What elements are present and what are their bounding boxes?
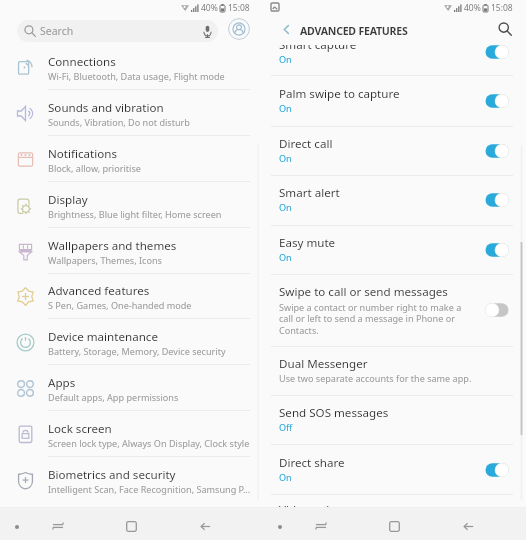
staticText: Palm swipe to capture [279, 86, 400, 102]
button[interactable]: Account [228, 18, 250, 40]
staticText: Screen lock type, Always On Display, Clo… [48, 437, 250, 449]
button[interactable]: Device maintenance [0, 319, 263, 365]
staticText: Battery, Storage, Memory, Device securit… [48, 345, 226, 357]
staticText: Dual Messenger [279, 356, 368, 372]
staticText: On [279, 201, 292, 213]
staticText: Wallpapers and themes [48, 238, 177, 254]
staticText: Default apps, App permissions [48, 391, 179, 403]
staticText: Send SOS messages [279, 405, 389, 421]
button[interactable]: Toggle on [484, 143, 510, 159]
staticText: Sounds and vibration [48, 100, 164, 116]
other: Voice search [203, 25, 212, 38]
button[interactable]: Apps [0, 365, 263, 411]
button[interactable]: Toggle on [484, 192, 510, 208]
staticText: 15:08 [491, 2, 513, 13]
staticText: Swipe a contact or number right to make … [279, 301, 462, 337]
button[interactable]: Back [273, 16, 299, 42]
staticText: On [279, 152, 292, 164]
staticText: Direct share [279, 455, 345, 471]
button[interactable]: Send SOS messages [263, 395, 526, 445]
button[interactable]: Menu [269, 516, 290, 537]
staticText: Device maintenance [48, 329, 158, 345]
staticText: Direct call [279, 136, 333, 152]
staticText: S Pen, Games, One-handed mode [48, 299, 192, 311]
button[interactable]: Dual Messenger [263, 346, 526, 396]
staticText: Apps [48, 375, 76, 391]
staticText: Sounds, Vibration, Do not disturb [48, 116, 190, 128]
staticText: 40% [464, 2, 481, 13]
staticText: Connections [48, 54, 116, 70]
button[interactable]: Menu [6, 516, 27, 537]
staticText: On [279, 102, 292, 114]
button[interactable]: Easy mute [263, 225, 526, 275]
button[interactable]: Swipe to call or send messages [263, 275, 526, 346]
button[interactable]: Smart capture [263, 45, 526, 76]
button[interactable]: Direct share [263, 445, 526, 495]
staticText: On [279, 471, 292, 483]
staticText: Intelligent Scan, Face Recognition, Sams… [48, 483, 251, 495]
staticText: Lock screen [48, 421, 112, 437]
button[interactable]: Search [492, 16, 518, 42]
staticText: Wi-Fi, Bluetooth, Data usage, Flight mod… [48, 70, 225, 82]
button[interactable]: Recents [47, 515, 69, 537]
button[interactable]: Sounds and vibration [0, 90, 263, 136]
staticText: Advanced features [48, 283, 150, 299]
button[interactable]: Toggle on [484, 242, 510, 258]
button[interactable]: Home [383, 515, 405, 537]
button[interactable]: Back [194, 515, 216, 537]
button[interactable]: Palm swipe to capture [263, 76, 526, 126]
button[interactable]: Display [0, 182, 263, 228]
staticText: Swipe to call or send messages [279, 284, 448, 300]
staticText: On [279, 251, 292, 263]
staticText: Biometrics and security [48, 467, 176, 483]
button[interactable]: Connections [0, 44, 263, 90]
button[interactable]: Wallpapers and themes [0, 228, 263, 274]
button[interactable]: Search [17, 20, 218, 42]
button[interactable]: Biometrics and security [0, 457, 263, 503]
staticText: Smart capture [279, 45, 357, 53]
button[interactable]: Notifications [0, 136, 263, 182]
button[interactable]: Toggle on [484, 462, 510, 478]
staticText: Wallpapers, Themes, Icons [48, 254, 162, 266]
button[interactable]: Smart alert [263, 175, 526, 225]
staticText: On [279, 53, 292, 65]
staticText: Block, allow, prioritise [48, 162, 141, 174]
staticText: 15:08 [228, 2, 250, 13]
button[interactable]: Toggle on [484, 45, 510, 60]
staticText: Off [279, 421, 293, 433]
staticText: Notifications [48, 146, 117, 162]
button[interactable]: Direct call [263, 126, 526, 176]
staticText: Video enhancer [279, 502, 365, 507]
staticText: 40% [201, 2, 218, 13]
button[interactable]: Toggle off [484, 302, 510, 318]
button[interactable]: Recents [310, 515, 332, 537]
button[interactable]: Home [120, 515, 142, 537]
staticText: ADVANCED FEATURES [300, 24, 408, 38]
staticText: Use two separate accounts for the same a… [279, 372, 472, 384]
button[interactable]: Advanced features [0, 273, 263, 319]
staticText: Smart alert [279, 185, 340, 201]
staticText: Display [48, 192, 88, 208]
staticText: Brightness, Blue light filter, Home scre… [48, 208, 222, 220]
button[interactable]: Toggle on [484, 93, 510, 109]
staticText: Easy mute [279, 235, 336, 251]
button[interactable]: Back [457, 515, 479, 537]
staticText: Search [40, 24, 74, 38]
button[interactable]: Lock screen [0, 411, 263, 457]
